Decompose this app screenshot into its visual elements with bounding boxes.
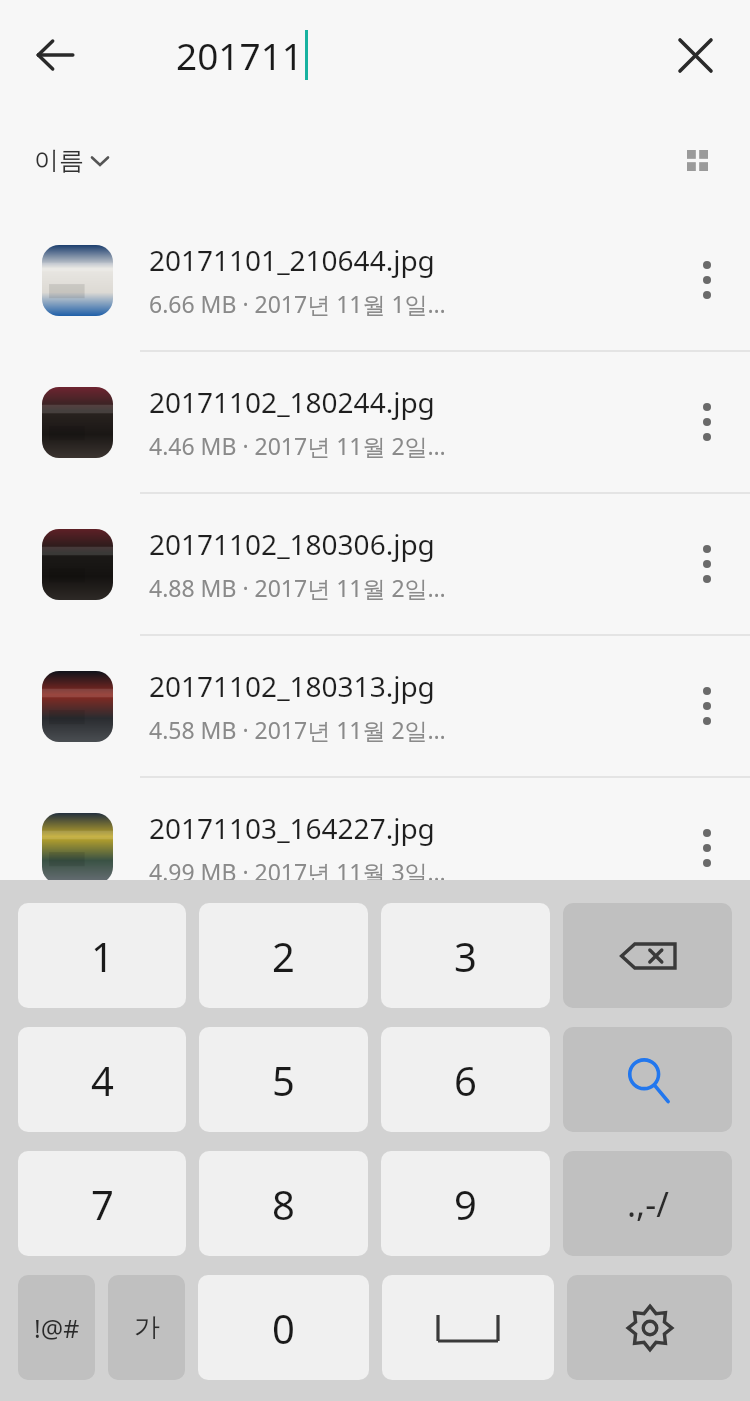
button[interactable]: 20171102_180306.jpg bbox=[0, 494, 750, 634]
button[interactable]: 이름 bbox=[26, 137, 116, 184]
staticText: .,-/ bbox=[627, 1181, 669, 1227]
button[interactable]: Symbols bbox=[563, 1151, 732, 1256]
staticText: 20171101_210644.jpg bbox=[149, 241, 435, 279]
staticText: 0 bbox=[272, 1301, 295, 1355]
staticText: 1 bbox=[91, 929, 114, 983]
staticText: 9 bbox=[454, 1177, 477, 1231]
staticText: 5 bbox=[272, 1053, 295, 1107]
staticText: 20171102_180244.jpg bbox=[149, 383, 435, 421]
staticText: 20171102_180313.jpg bbox=[149, 667, 435, 705]
button[interactable]: 1 bbox=[18, 903, 186, 1008]
button[interactable]: 0 bbox=[198, 1275, 369, 1380]
button[interactable]: 5 bbox=[199, 1027, 368, 1132]
staticText: 6.66 MB · 2017년 11월 1일… bbox=[149, 288, 446, 319]
staticText: 8 bbox=[272, 1177, 295, 1231]
button[interactable]: Clear bbox=[654, 14, 736, 96]
staticText: 201711 bbox=[176, 30, 303, 80]
staticText: 4.58 MB · 2017년 11월 2일… bbox=[149, 714, 446, 745]
button[interactable]: 20171103_164227.jpg bbox=[0, 778, 750, 918]
button[interactable]: 6 bbox=[381, 1027, 550, 1132]
button[interactable]: 가 bbox=[108, 1275, 185, 1380]
button[interactable]: 4 bbox=[18, 1027, 186, 1132]
button[interactable]: Space bbox=[382, 1275, 554, 1380]
staticText: 가 bbox=[134, 1311, 160, 1344]
button[interactable]: 8 bbox=[199, 1151, 368, 1256]
button[interactable]: More options bbox=[664, 778, 750, 918]
button[interactable]: Search bbox=[563, 1027, 732, 1132]
button[interactable]: 9 bbox=[381, 1151, 550, 1256]
staticText: 3 bbox=[454, 929, 477, 983]
staticText: 6 bbox=[454, 1053, 477, 1107]
button[interactable]: !@# bbox=[18, 1275, 95, 1380]
button[interactable]: 7 bbox=[18, 1151, 186, 1256]
button[interactable]: 20171102_180313.jpg bbox=[0, 636, 750, 776]
button[interactable]: 2 bbox=[199, 903, 368, 1008]
staticText: 7 bbox=[91, 1177, 114, 1231]
staticText: 2 bbox=[272, 929, 295, 983]
button[interactable]: 20171102_180244.jpg bbox=[0, 352, 750, 492]
staticText: 이름 bbox=[34, 145, 84, 176]
staticText: 4.46 MB · 2017년 11월 2일… bbox=[149, 430, 446, 461]
button[interactable]: More options bbox=[664, 352, 750, 492]
button[interactable]: More options bbox=[664, 210, 750, 350]
staticText: 4 bbox=[91, 1053, 114, 1107]
staticText: 4.88 MB · 2017년 11월 2일… bbox=[149, 572, 446, 603]
button[interactable]: More options bbox=[664, 494, 750, 634]
button[interactable]: Back bbox=[14, 14, 96, 96]
button[interactable]: 3 bbox=[381, 903, 550, 1008]
button[interactable]: Delete bbox=[563, 903, 732, 1008]
button[interactable]: Settings bbox=[567, 1275, 732, 1380]
staticText: !@# bbox=[34, 1311, 80, 1345]
staticText: 4.99 MB · 2017년 11월 3일… bbox=[149, 856, 446, 887]
button[interactable]: Grid view bbox=[666, 129, 728, 191]
staticText: 20171103_164227.jpg bbox=[149, 809, 435, 847]
button[interactable]: 20171101_210644.jpg bbox=[0, 210, 750, 350]
staticText: 20171102_180306.jpg bbox=[149, 525, 435, 563]
button[interactable]: More options bbox=[664, 636, 750, 776]
